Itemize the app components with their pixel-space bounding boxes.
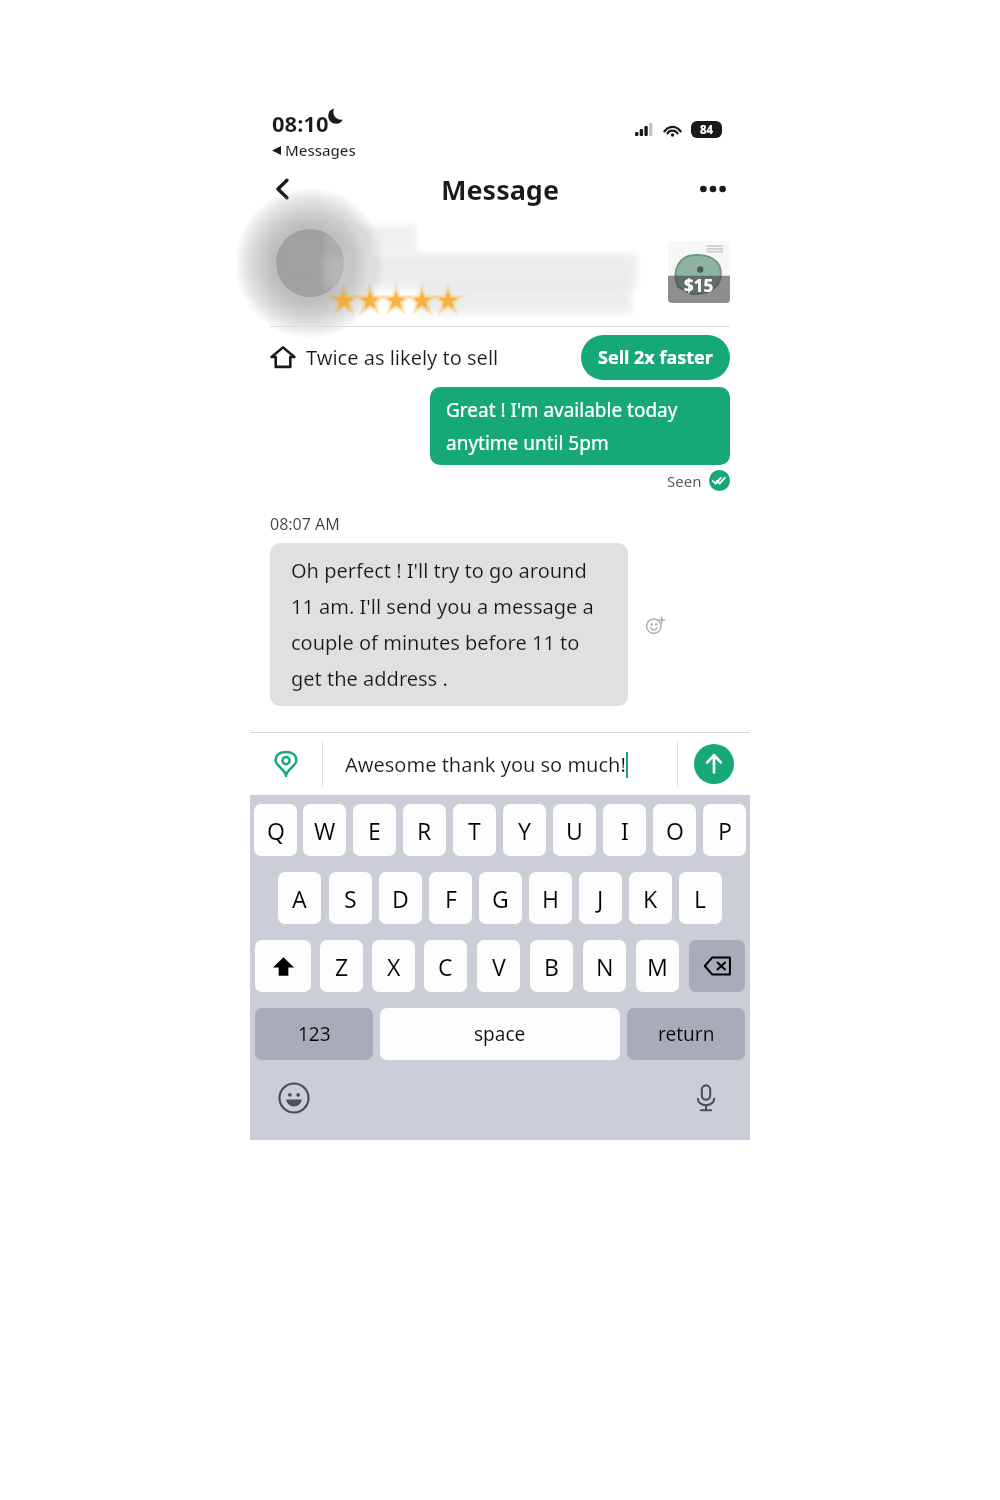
staticText: Sell 2x faster (598, 345, 713, 370)
staticText: N (596, 951, 614, 982)
staticText: V (492, 951, 506, 982)
staticText: Message (441, 171, 560, 208)
staticText: space (474, 1021, 526, 1047)
staticText: H (542, 883, 560, 914)
staticText: S (344, 883, 357, 914)
button[interactable]: Add reaction (640, 610, 670, 640)
button[interactable]: Great ! I'm available today anytime unti… (430, 387, 730, 465)
button[interactable]: L (679, 872, 722, 924)
button[interactable]: Share location (250, 733, 322, 795)
staticText: Oh perfect ! I'll try to go around 11 am… (291, 557, 607, 692)
staticText: I (621, 815, 629, 846)
button[interactable]: I (603, 804, 646, 856)
button[interactable]: J (579, 872, 622, 924)
button[interactable]: A (278, 872, 321, 924)
staticText: F (445, 883, 457, 914)
staticText: J (597, 883, 604, 914)
button[interactable]: N (583, 940, 626, 992)
button[interactable]: $15 (668, 241, 730, 303)
staticText: O (666, 815, 684, 846)
staticText: P (718, 815, 732, 846)
button[interactable]: Q (254, 804, 297, 856)
staticText: 123 (298, 1021, 331, 1047)
button[interactable]: Twice as likely to sell (270, 327, 730, 387)
button[interactable]: K (629, 872, 672, 924)
button[interactable]: Emoji (274, 1078, 314, 1118)
staticText: Z (335, 951, 349, 982)
staticText: C (438, 951, 453, 982)
button[interactable]: 123 (255, 1008, 373, 1060)
staticText: 84 (700, 122, 714, 138)
staticText: 08:10 (272, 108, 329, 138)
staticText: Awesome thank you so much! (345, 751, 626, 778)
button[interactable]: G (479, 872, 522, 924)
button[interactable]: V (477, 940, 520, 992)
staticText: L (694, 883, 707, 914)
button[interactable]: W (303, 804, 346, 856)
staticText: U (566, 815, 583, 846)
staticText: T (468, 815, 481, 846)
button[interactable]: More options (690, 166, 736, 212)
button[interactable]: S (329, 872, 372, 924)
button[interactable]: return (627, 1008, 745, 1060)
staticText: Messages (285, 140, 356, 160)
button[interactable]: Shift (255, 940, 311, 992)
button[interactable]: X (372, 940, 415, 992)
button[interactable]: Backspace (689, 940, 745, 992)
staticText: K (643, 883, 658, 914)
staticText: Seen (667, 471, 702, 491)
button[interactable]: T (453, 804, 496, 856)
staticText: G (492, 883, 509, 914)
button[interactable]: D (379, 872, 422, 924)
button[interactable]: Oh perfect ! I'll try to go around 11 am… (270, 543, 628, 706)
staticText: return (658, 1021, 715, 1047)
staticText: Great ! I'm available today anytime unti… (446, 397, 714, 455)
staticText: Q (267, 815, 285, 846)
button[interactable]: Y (503, 804, 546, 856)
button[interactable]: E (353, 804, 396, 856)
button[interactable]: B (530, 940, 573, 992)
staticText: B (544, 951, 559, 982)
button[interactable]: F (429, 872, 472, 924)
staticText: A (292, 883, 307, 914)
staticText: Y (518, 815, 532, 846)
button[interactable]: U (553, 804, 596, 856)
button[interactable]: Back (260, 166, 306, 212)
staticText: W (314, 815, 336, 846)
button[interactable]: space (380, 1008, 620, 1060)
button[interactable]: H (529, 872, 572, 924)
button[interactable]: M (636, 940, 679, 992)
button[interactable]: Send (678, 733, 750, 795)
button[interactable]: C (424, 940, 467, 992)
staticText: D (392, 883, 409, 914)
staticText: $15 (684, 274, 714, 297)
button[interactable]: O (653, 804, 696, 856)
staticText: X (387, 951, 401, 982)
button[interactable]: Voice input (686, 1078, 726, 1118)
staticText: 08:07 AM (270, 513, 340, 535)
button[interactable]: R (403, 804, 446, 856)
button[interactable]: Sell 2x faster (581, 335, 730, 380)
staticText: M (647, 951, 668, 982)
staticText: Twice as likely to sell (306, 344, 499, 371)
staticText: E (368, 815, 381, 846)
staticText: R (417, 815, 432, 846)
button[interactable]: Z (320, 940, 363, 992)
button[interactable]: P (703, 804, 746, 856)
